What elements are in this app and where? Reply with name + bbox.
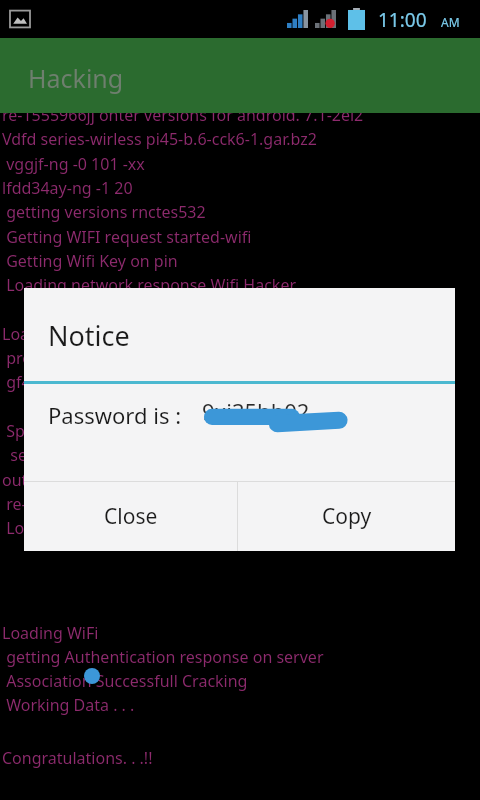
staticText: re-1555966jj onter versions for android.…	[2, 104, 364, 126]
staticText: Getting WIFI request started-wifi	[2, 226, 252, 248]
staticText: Copy	[322, 502, 372, 531]
staticText: Close	[104, 502, 158, 531]
staticText: Vdfd series-wirless pi45-b.6-cck6-1.gar.…	[2, 128, 317, 150]
staticText: Congratulations. . .!!	[2, 747, 153, 769]
staticText: AM	[441, 14, 460, 30]
staticText: 11:00	[378, 7, 427, 33]
staticText: Notice	[48, 317, 130, 354]
staticText: vggjf-ng -0 101 -xx	[2, 153, 145, 175]
staticText: preparing session keys	[2, 347, 178, 369]
staticText: Speed testing network	[2, 420, 176, 442]
staticText: getting Authentication response on serve…	[2, 646, 324, 668]
staticText: Password is :	[48, 400, 182, 430]
button[interactable]: Copy	[238, 482, 455, 551]
button[interactable]: Close	[24, 482, 237, 551]
staticText: sending handshake 4 of 4	[2, 444, 204, 466]
staticText: re-sending request	[2, 493, 149, 515]
staticText: 9xj35hb02	[202, 396, 310, 426]
staticText: Loading ssid responses ...	[2, 323, 195, 345]
staticText: out of range retry ...	[2, 469, 152, 491]
staticText: gf45-kk3 ng-0 wifi-4	[2, 371, 155, 393]
staticText: Loading WiFi	[2, 622, 99, 644]
staticText: lfdd34ay-ng -1 20	[2, 177, 133, 199]
staticText: Loading network response Wifi Hacker	[2, 274, 297, 296]
staticText: Hacking	[28, 61, 124, 95]
staticText: Loading Passwords on server speed...\	[2, 517, 295, 539]
staticText: getting versions rnctes532	[2, 201, 206, 223]
staticText: Association Successfull Cracking	[2, 670, 248, 692]
staticText: Getting Wifi Key on pin	[2, 250, 178, 272]
other: Gallery	[10, 9, 30, 29]
staticText: Working Data . . .	[2, 694, 135, 716]
